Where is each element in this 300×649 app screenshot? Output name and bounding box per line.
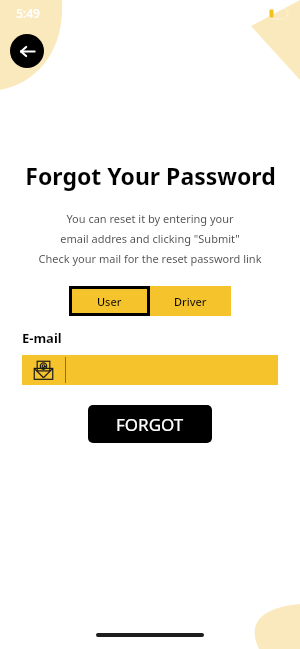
staticText: You can reset it by entering your [66,211,234,226]
button[interactable]: FORGOT [88,405,212,443]
staticText: 5:49 [16,5,40,21]
staticText: User [97,294,122,309]
button[interactable]: User [69,286,150,316]
staticText: email addres and clicking "Submit" [60,231,240,246]
staticText: Driver [174,294,207,309]
button[interactable]: Driver [150,286,231,316]
staticText: FORGOT [116,413,184,436]
staticText: Forgot Your Password [25,160,276,191]
button[interactable] [22,355,278,385]
staticText: Check your mail for the reset password l… [38,251,262,266]
button[interactable]: Back [10,34,44,68]
staticText: E-mail [22,329,62,347]
